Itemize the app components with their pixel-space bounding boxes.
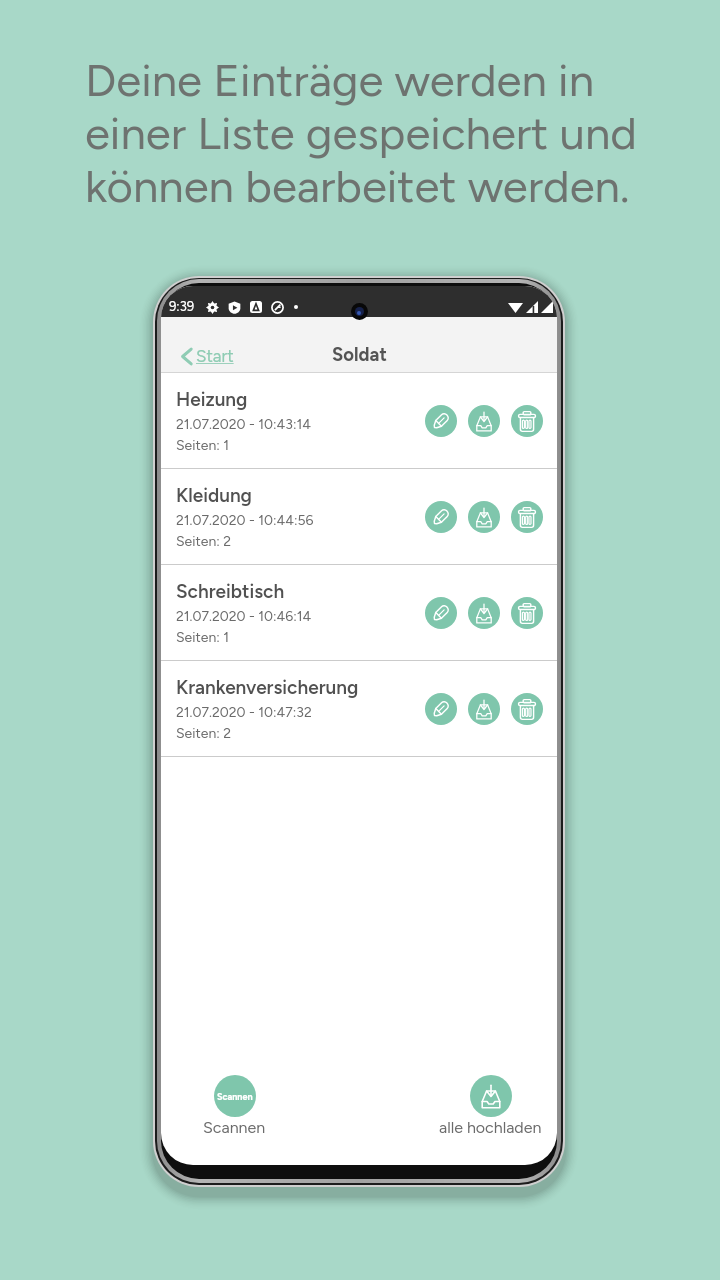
button[interactable]: Hochladen: [468, 597, 500, 629]
button[interactable]: Heizung: [161, 373, 557, 469]
button[interactable]: Start: [161, 340, 244, 373]
button[interactable]: Löschen: [511, 597, 543, 629]
button[interactable]: Hochladen: [468, 693, 500, 725]
staticText: Soldat: [332, 343, 387, 365]
staticText: 21.07.2020 - 10:43:14: [176, 416, 311, 433]
staticText: 9:39: [169, 299, 195, 315]
staticText: Schreibtisch: [176, 580, 285, 603]
staticText: Seiten: 1: [176, 629, 229, 646]
button[interactable]: Krankenversicherung: [161, 661, 557, 757]
staticText: Kleidung: [176, 484, 252, 507]
staticText: Scannen: [203, 1118, 266, 1137]
staticText: Seiten: 2: [176, 725, 232, 742]
staticText: Seiten: 2: [176, 533, 232, 550]
button[interactable]: Bearbeiten: [425, 501, 457, 533]
button[interactable]: Hochladen: [468, 501, 500, 533]
button[interactable]: Hochladen: [468, 405, 500, 437]
staticText: Seiten: 1: [176, 437, 229, 454]
staticText: alle hochladen: [439, 1118, 542, 1137]
button[interactable]: Scannen: [193, 1065, 276, 1143]
button[interactable]: Löschen: [511, 501, 543, 533]
staticText: Deine Einträge werden in einer Liste ges…: [85, 53, 665, 214]
button[interactable]: Schreibtisch: [161, 565, 557, 661]
button[interactable]: Bearbeiten: [425, 597, 457, 629]
staticText: 21.07.2020 - 10:44:56: [176, 512, 314, 529]
button[interactable]: alle hochladen: [429, 1065, 552, 1143]
staticText: Start: [196, 346, 234, 366]
button[interactable]: Bearbeiten: [425, 693, 457, 725]
button[interactable]: Bearbeiten: [425, 405, 457, 437]
staticText: 21.07.2020 - 10:46:14: [176, 608, 312, 625]
button[interactable]: Kleidung: [161, 469, 557, 565]
staticText: Krankenversicherung: [176, 676, 359, 699]
staticText: 21.07.2020 - 10:47:32: [176, 704, 312, 721]
button[interactable]: Löschen: [511, 693, 543, 725]
staticText: Heizung: [176, 388, 248, 411]
staticText: Scannen: [217, 1091, 253, 1102]
button[interactable]: Löschen: [511, 405, 543, 437]
